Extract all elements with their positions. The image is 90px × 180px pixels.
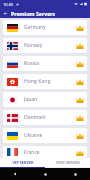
staticText: FREE SERVER xyxy=(56,160,80,165)
button[interactable]: Back xyxy=(0,168,30,180)
staticText: Premium Servers xyxy=(11,10,56,17)
button[interactable]: Home xyxy=(30,168,60,180)
staticText: Russia xyxy=(24,60,40,67)
staticText: VIP SERVER xyxy=(12,160,34,165)
button[interactable]: Russia xyxy=(3,56,87,71)
staticText: Ukraine xyxy=(24,132,43,139)
button[interactable]: VIP SERVER xyxy=(0,158,45,167)
button[interactable]: Denmark xyxy=(3,110,87,125)
button[interactable]: Germany xyxy=(3,20,87,35)
button[interactable]: Norway xyxy=(3,38,87,53)
button[interactable]: FREE SERVER xyxy=(45,158,90,167)
button[interactable]: Recents xyxy=(60,168,90,180)
staticText: Germany xyxy=(24,24,46,31)
staticText: Norway xyxy=(24,42,43,49)
button[interactable]: France xyxy=(3,146,87,158)
button[interactable]: Hong Kong xyxy=(3,74,87,89)
staticText: Japan xyxy=(24,96,38,103)
button[interactable]: Ukraine xyxy=(3,128,87,143)
staticText: Denmark xyxy=(24,114,46,121)
button[interactable]: Back xyxy=(0,8,11,18)
staticText: France xyxy=(24,149,40,156)
button[interactable]: Japan xyxy=(3,92,87,107)
staticText: 10:06 xyxy=(3,2,14,7)
staticText: Hong Kong xyxy=(24,78,51,85)
